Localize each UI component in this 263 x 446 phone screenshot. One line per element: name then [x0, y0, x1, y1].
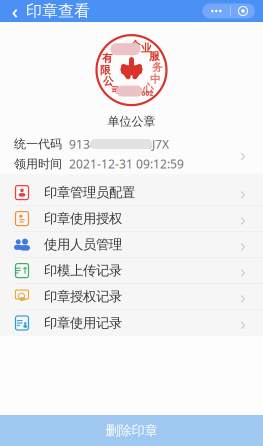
staticText: 公: [103, 75, 114, 88]
staticText: ›: [240, 284, 246, 309]
staticText: ›: [240, 206, 246, 231]
staticText: ›: [240, 311, 246, 335]
button[interactable]: 使用人员管理: [0, 232, 263, 258]
staticText: 9134 4J7X: [69, 136, 169, 152]
button[interactable]: Close: [231, 3, 255, 18]
staticText: 印章使用授权: [44, 210, 122, 227]
staticText: 中: [150, 73, 161, 86]
staticText: ‹: [11, 0, 18, 24]
staticText: 服: [149, 50, 160, 63]
button[interactable]: 印章使用记录: [0, 310, 263, 336]
staticText: ›: [240, 142, 246, 166]
staticText: ↑: [21, 265, 29, 276]
button[interactable]: More: [202, 3, 230, 18]
staticText: 领用时间: [14, 157, 62, 171]
staticText: 单位公章: [107, 114, 155, 129]
button[interactable]: 统一代码: [0, 134, 263, 174]
staticText: 有: [102, 52, 113, 65]
staticText: 2021-12-31 09:12:59: [69, 156, 184, 172]
staticText: 印章查看: [26, 1, 90, 21]
button[interactable]: 印章使用授权: [0, 206, 263, 232]
staticText: 602: [141, 89, 153, 98]
staticText: 限: [100, 64, 111, 77]
staticText: ›: [240, 180, 246, 205]
button[interactable]: Back: [4, 0, 26, 22]
button[interactable]: 印章管理员配置: [0, 180, 263, 206]
staticText: 印章使用记录: [44, 315, 122, 331]
staticText: 企: [130, 39, 141, 52]
button[interactable]: ↑: [0, 258, 263, 284]
button[interactable]: 印章授权记录: [0, 284, 263, 310]
staticText: 务: [152, 61, 163, 74]
staticText: 印模上传记录: [44, 262, 122, 279]
staticText: 司: [111, 85, 119, 95]
staticText: 使用人员管理: [44, 236, 122, 253]
staticText: 业: [141, 42, 152, 55]
staticText: ›: [240, 258, 246, 283]
staticText: 心: [143, 82, 154, 95]
staticText: 印章管理员配置: [44, 184, 135, 201]
staticText: ›: [240, 232, 246, 257]
staticText: 印章授权记录: [44, 288, 122, 305]
staticText: 统一代码: [14, 137, 62, 151]
staticText: 删除印章: [105, 422, 157, 439]
button[interactable]: 删除印章: [0, 415, 263, 446]
